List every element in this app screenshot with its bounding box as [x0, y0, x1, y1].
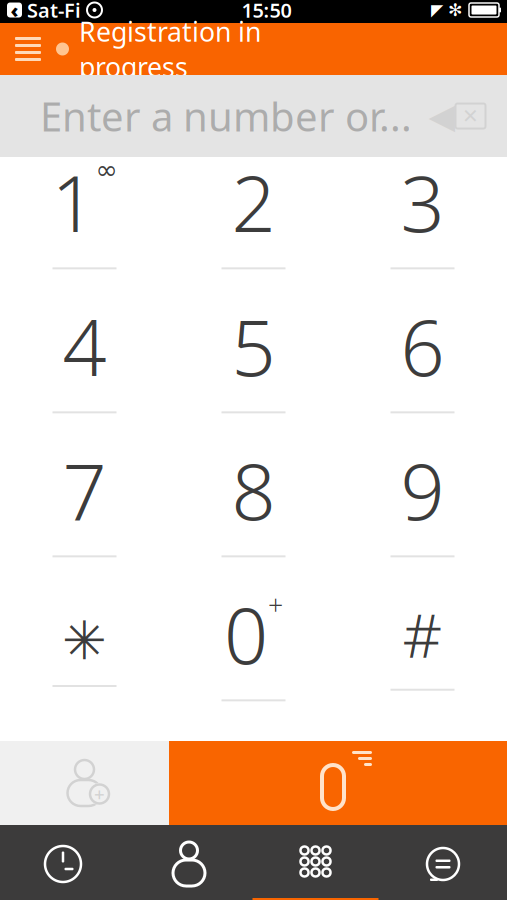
- button[interactable]: 9: [338, 445, 507, 589]
- staticText: 1: [51, 151, 95, 253]
- button[interactable]: Recents: [0, 825, 126, 900]
- staticText: 4: [62, 295, 106, 397]
- staticText: 5: [231, 295, 275, 397]
- button[interactable]: Menu: [0, 23, 56, 75]
- button[interactable]: Messages: [379, 825, 507, 900]
- button[interactable]: 2: [169, 157, 338, 301]
- staticText: 3: [400, 151, 444, 253]
- button[interactable]: Keypad: [252, 825, 379, 900]
- staticText: ◤: [431, 1, 443, 19]
- staticText: +: [268, 587, 283, 622]
- button[interactable]: 6: [338, 301, 507, 445]
- button[interactable]: Registration in progress: [56, 23, 281, 75]
- staticText: #: [402, 593, 442, 675]
- button[interactable]: Contacts: [126, 825, 252, 900]
- button[interactable]: Call: [169, 741, 507, 825]
- staticText: 9: [400, 439, 444, 541]
- staticText: ✕: [462, 105, 479, 127]
- button[interactable]: ✳: [0, 589, 169, 733]
- staticText: ✻: [448, 0, 463, 20]
- button[interactable]: Add contact: [0, 741, 169, 825]
- button[interactable]: 1: [0, 157, 169, 301]
- staticText: 8: [231, 439, 275, 541]
- staticText: +: [94, 782, 105, 806]
- staticText: ∞: [95, 155, 117, 185]
- button[interactable]: #: [338, 589, 507, 733]
- staticText: 6: [400, 295, 444, 397]
- button[interactable]: 5: [169, 301, 338, 445]
- button[interactable]: 8: [169, 445, 338, 589]
- button[interactable]: 3: [338, 157, 507, 301]
- staticText: ✳: [62, 610, 107, 671]
- button[interactable]: 0: [169, 589, 338, 733]
- button[interactable]: Backspace: [429, 101, 485, 131]
- button[interactable]: 4: [0, 301, 169, 445]
- staticText: 0: [224, 583, 268, 685]
- staticText: Sat-Fi: [27, 0, 81, 23]
- staticText: 7: [62, 439, 106, 541]
- button[interactable]: 7: [0, 445, 169, 589]
- staticText: ‹: [10, 0, 18, 23]
- staticText: 15:50: [241, 0, 291, 23]
- staticText: Registration in progress: [79, 14, 261, 84]
- staticText: ◀: [428, 96, 455, 136]
- staticText: 2: [231, 151, 275, 253]
- staticText: Enter a number or...: [40, 89, 412, 142]
